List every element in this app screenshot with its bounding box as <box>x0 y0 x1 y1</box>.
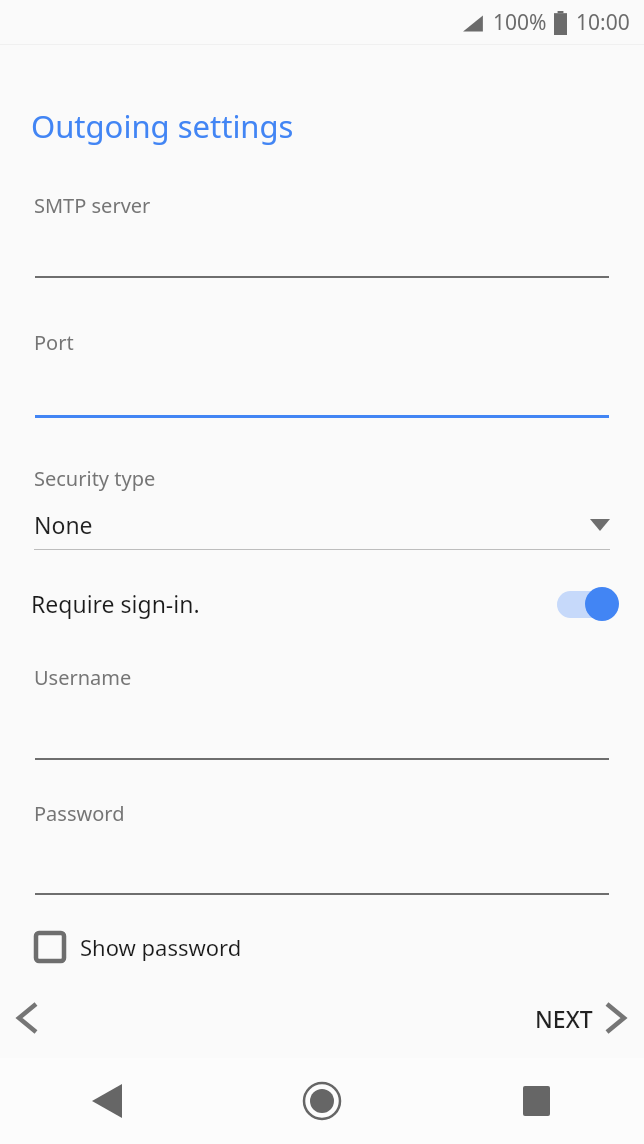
staticText: SMTP server <box>34 192 151 219</box>
staticText: Username <box>34 664 132 691</box>
button[interactable]: Show password <box>26 921 242 973</box>
button[interactable]: None <box>34 498 610 551</box>
staticText: Show password <box>80 932 242 962</box>
button[interactable]: Previous <box>4 995 50 1041</box>
button[interactable]: Password <box>34 800 610 860</box>
staticText: NEXT <box>535 1003 593 1034</box>
staticText: Outgoing settings <box>31 105 294 147</box>
staticText: Require sign-in. <box>31 588 200 619</box>
button[interactable]: Home <box>214 1058 429 1144</box>
staticText: Security type <box>34 465 156 492</box>
button[interactable]: NEXT <box>535 991 632 1045</box>
staticText: Port <box>34 329 74 356</box>
button[interactable]: Recent apps <box>429 1058 644 1144</box>
button[interactable]: Back <box>0 1058 214 1144</box>
staticText: 10:00 <box>576 8 630 37</box>
staticText: Password <box>34 800 125 827</box>
staticText: None <box>34 509 93 540</box>
button[interactable]: Require sign-in. <box>0 572 644 635</box>
staticText: 100% <box>493 8 547 37</box>
button[interactable]: Port <box>34 329 610 389</box>
button[interactable]: SMTP server <box>34 192 610 252</box>
button[interactable]: Username <box>34 664 610 724</box>
